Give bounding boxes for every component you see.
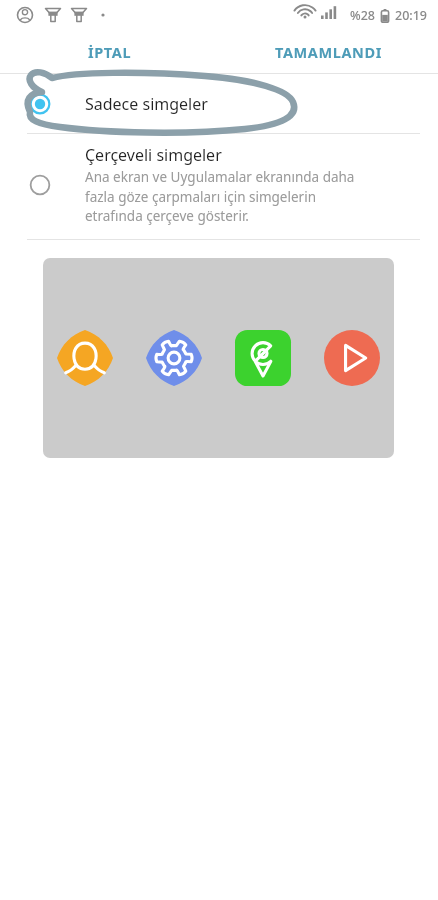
staticText: İPTAL xyxy=(88,42,132,62)
staticText: %28 xyxy=(350,7,375,24)
other: Ayarlar xyxy=(146,330,202,386)
staticText: TAMAMLANDI xyxy=(275,42,382,62)
button[interactable]: TAMAMLANDI xyxy=(219,30,438,73)
other: Play xyxy=(324,330,380,386)
button[interactable]: Çerçeveli simgeler xyxy=(0,134,438,239)
staticText: Çerçeveli simgeler xyxy=(85,144,222,166)
staticText: 20:19 xyxy=(395,7,428,24)
staticText: Sadece simgeler xyxy=(85,93,208,115)
other: Haritalar xyxy=(235,330,291,386)
other: Rehber xyxy=(57,330,113,386)
staticText: Ana ekran ve Uygulamalar ekranında daha … xyxy=(85,168,355,225)
button[interactable]: Sadece simgeler xyxy=(0,74,438,133)
button[interactable]: İPTAL xyxy=(0,30,219,73)
